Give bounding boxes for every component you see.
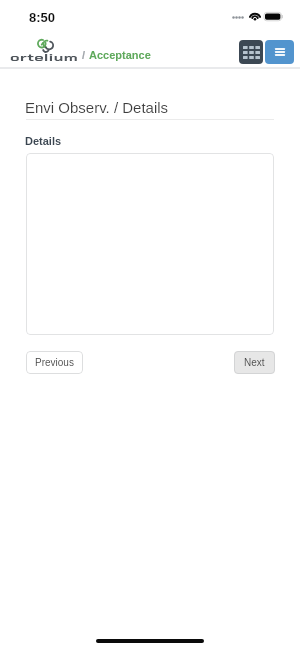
staticText: Acceptance <box>89 49 151 61</box>
staticText: 8:50 <box>29 10 56 25</box>
button[interactable]: Next <box>234 351 275 374</box>
staticText: Next <box>244 357 265 368</box>
button[interactable]: Details text field <box>26 153 274 335</box>
staticText: / <box>82 49 89 61</box>
button[interactable]: Apps grid <box>239 40 263 64</box>
staticText: Envi Observ. / Details <box>25 99 169 116</box>
staticText: ortelium <box>10 51 80 64</box>
staticText: Details <box>25 135 62 147</box>
button[interactable]: Previous <box>26 351 83 374</box>
button[interactable]: Menu <box>265 40 294 64</box>
staticText: Previous <box>35 357 74 368</box>
